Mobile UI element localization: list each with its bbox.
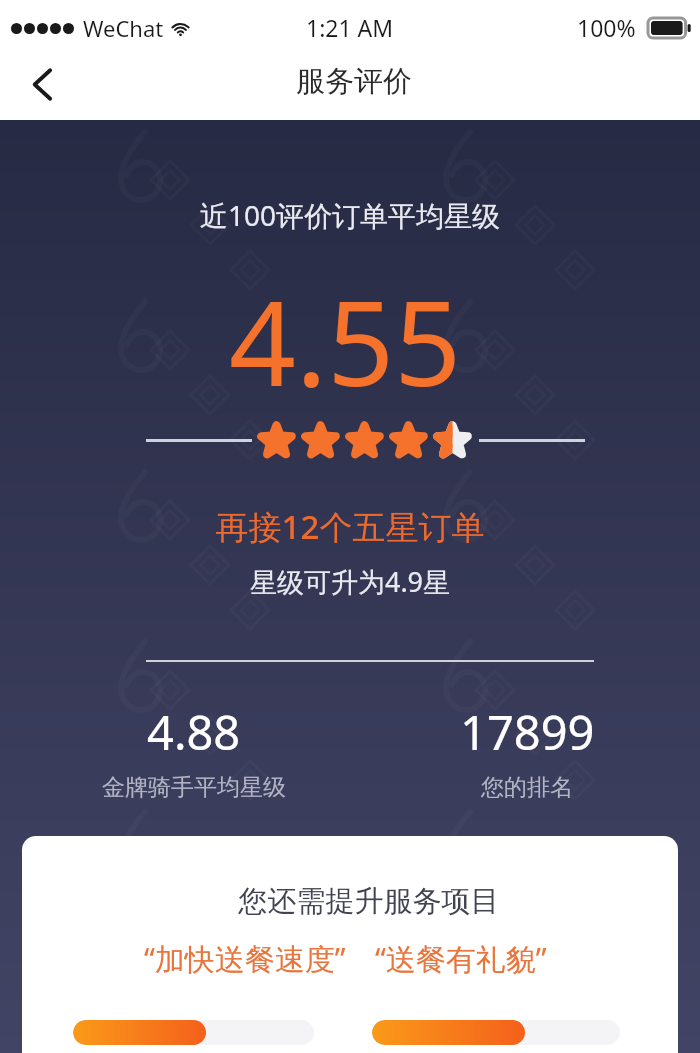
staticText: 金牌骑手平均星级 (102, 773, 286, 802)
staticText: 4.55 (0, 261, 695, 420)
staticText: 服务评价 (296, 63, 412, 100)
staticText: 100% (577, 12, 636, 43)
staticText: 您的排名 (481, 773, 573, 802)
staticText: 您还需提升服务项目 (41, 883, 678, 920)
button[interactable]: 17899 (377, 700, 677, 802)
staticText: WeChat (83, 13, 164, 43)
button[interactable]: Back (0, 52, 64, 116)
staticText: 近100评价订单平均星级 (0, 196, 700, 234)
staticText: “加快送餐速度” (144, 938, 346, 979)
button[interactable]: 加快送餐速度 55% (73, 1020, 314, 1045)
staticText: 再接12个五星订单 (0, 504, 700, 549)
staticText: 星级可升为4.9星 (0, 563, 700, 600)
staticText: 4.88 (147, 700, 241, 764)
button[interactable]: “加快送餐速度” (142, 930, 348, 987)
button[interactable]: 送餐有礼貌 62% (372, 1020, 620, 1045)
staticText: “送餐有礼貌” (375, 938, 547, 979)
staticText: 17899 (460, 700, 595, 764)
button[interactable]: “送餐有礼貌” (373, 930, 549, 987)
staticText: 1:21 AM (306, 12, 394, 43)
button[interactable]: 4.88 (44, 700, 344, 802)
